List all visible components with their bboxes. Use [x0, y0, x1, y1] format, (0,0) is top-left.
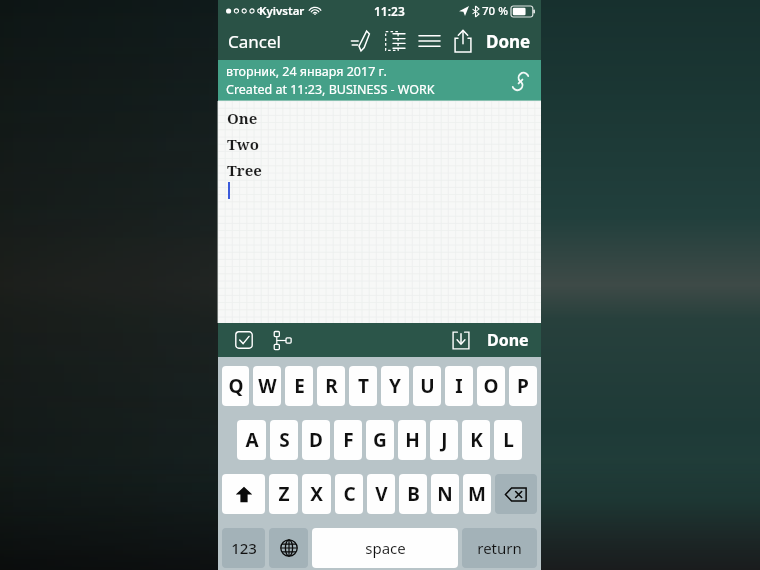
button[interactable]: S [270, 420, 298, 460]
button[interactable]: C [335, 474, 363, 514]
button[interactable]: E [285, 366, 313, 406]
button[interactable]: A [237, 420, 266, 460]
button[interactable]: return [462, 528, 537, 568]
button[interactable]: Done [480, 30, 541, 53]
staticText: E [294, 373, 305, 399]
button[interactable]: T [349, 366, 377, 406]
staticText: 123 [231, 538, 257, 558]
staticText: O [483, 373, 499, 399]
button[interactable]: Y [381, 366, 409, 406]
button[interactable]: Share [446, 24, 480, 58]
button[interactable]: J [430, 420, 458, 460]
button[interactable]: L [494, 420, 522, 460]
staticText: D [309, 427, 323, 453]
staticText: вторник, 24 января 2017 г. [226, 63, 387, 80]
button[interactable]: Done [479, 325, 537, 355]
button[interactable]: Structure [268, 326, 296, 354]
staticText: Kyivstar [259, 3, 305, 19]
staticText: Y [389, 373, 401, 399]
button[interactable]: B [399, 474, 427, 514]
button[interactable]: P [509, 366, 537, 406]
staticText: K [470, 427, 483, 453]
button[interactable]: K [462, 420, 490, 460]
button[interactable]: I [445, 366, 473, 406]
staticText: C [343, 481, 356, 507]
button[interactable]: X [302, 474, 331, 514]
staticText: R [325, 373, 338, 399]
button[interactable]: Switch language [269, 528, 308, 568]
button[interactable]: Link [505, 66, 535, 96]
button[interactable]: Save [447, 326, 475, 354]
button[interactable]: Menu [412, 24, 446, 58]
button[interactable]: Cancel [218, 30, 287, 53]
button[interactable]: Q [222, 366, 249, 406]
button[interactable]: R [317, 366, 345, 406]
staticText: Done [486, 30, 531, 53]
staticText: return [477, 538, 522, 558]
button[interactable]: F [334, 420, 362, 460]
button[interactable]: N [431, 474, 459, 514]
staticText: X [310, 481, 323, 507]
staticText: U [420, 373, 435, 399]
staticText: M [468, 481, 486, 507]
button[interactable]: G [366, 420, 394, 460]
staticText: 11:23 [374, 3, 405, 19]
staticText: Two [227, 134, 259, 154]
staticText: One [227, 108, 258, 128]
staticText: space [365, 538, 406, 558]
button[interactable]: Draw [344, 24, 378, 58]
staticText: H [405, 427, 420, 453]
button[interactable]: Checklist [230, 326, 258, 354]
button[interactable]: space [312, 528, 458, 568]
staticText: W [258, 373, 277, 399]
staticText: T [358, 373, 369, 399]
staticText: V [375, 481, 388, 507]
button[interactable]: D [302, 420, 330, 460]
staticText: S [279, 427, 290, 453]
staticText: I [455, 373, 463, 399]
staticText: Created at 11:23, BUSINESS - WORK [226, 81, 435, 98]
button[interactable]: вторник, 24 января 2017 г. [218, 60, 541, 101]
staticText: L [503, 427, 514, 453]
staticText: 70 % [482, 3, 508, 19]
button[interactable]: H [398, 420, 426, 460]
button[interactable]: M [463, 474, 491, 514]
button[interactable]: U [413, 366, 441, 406]
button[interactable]: Shift [222, 474, 265, 514]
staticText: J [441, 427, 448, 453]
staticText: Done [487, 329, 529, 351]
staticText: Q [228, 373, 244, 399]
button[interactable]: Z [269, 474, 298, 514]
staticText: P [517, 373, 529, 399]
staticText: Cancel [228, 30, 281, 53]
staticText: N [437, 481, 453, 507]
button[interactable]: Select [378, 24, 412, 58]
button[interactable]: W [253, 366, 281, 406]
button[interactable]: V [367, 474, 395, 514]
staticText: A [245, 427, 259, 453]
staticText: G [373, 427, 387, 453]
button[interactable]: 123 [222, 528, 265, 568]
button[interactable]: Backspace [495, 474, 537, 514]
button[interactable]: O [477, 366, 505, 406]
staticText: B [407, 481, 420, 507]
staticText: F [343, 427, 354, 453]
staticText: Tree [227, 160, 262, 180]
staticText: Z [278, 481, 290, 507]
